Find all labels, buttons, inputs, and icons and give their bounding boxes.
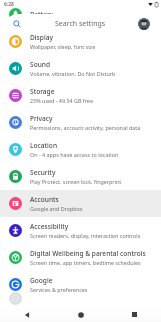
button[interactable]: Account: [138, 18, 150, 30]
staticText: Search settings: [55, 19, 106, 29]
staticText: Accounts: [30, 195, 59, 204]
button[interactable]: Storage: [0, 82, 161, 109]
staticText: Storage: [30, 87, 55, 96]
button[interactable]: Location: [0, 136, 161, 163]
staticText: On - 4 apps have access to location: [30, 151, 119, 158]
staticText: Volume, vibration, Do Not Disturb: [30, 70, 116, 77]
staticText: Google: [30, 276, 53, 285]
button[interactable]: Display: [0, 28, 161, 55]
button[interactable]: Home: [74, 308, 87, 321]
staticText: Wallpaper, sleep, font size: [30, 43, 96, 50]
staticText: Battery: [30, 10, 54, 19]
staticText: Accessibility: [30, 222, 69, 231]
button[interactable]: Google: [0, 271, 161, 298]
staticText: Google and Dropbox: [30, 205, 83, 212]
button[interactable]: Security: [0, 163, 161, 190]
button[interactable]: Accounts: [0, 190, 161, 217]
staticText: Screen readers, display, interaction con…: [30, 232, 141, 239]
button[interactable]: Battery: [0, 1, 161, 28]
staticText: Digital Wellbeing & parental controls: [30, 249, 146, 258]
button[interactable]: Sound: [0, 55, 161, 82]
staticText: Display: [30, 33, 53, 42]
button[interactable]: Back: [20, 308, 33, 321]
button[interactable]: Accessibility: [0, 217, 161, 244]
staticText: Permissions, account activity, personal …: [30, 124, 141, 131]
staticText: Sound: [30, 60, 51, 69]
button[interactable]: Digital Wellbeing & parental controls: [0, 244, 161, 271]
staticText: 6:28: [4, 1, 14, 8]
staticText: Location: [30, 141, 58, 150]
staticText: 23% used - 49.54 GB free: [30, 97, 93, 104]
button[interactable]: System: [0, 298, 161, 299]
staticText: Screen time, app timers, bedtime schedul…: [30, 259, 141, 266]
staticText: Privacy: [30, 114, 53, 123]
staticText: Services & preferences: [30, 286, 88, 293]
staticText: Play Protect, screen lock, fingerprint: [30, 178, 122, 185]
button[interactable]: Search settings: [7, 14, 154, 33]
button[interactable]: Privacy: [0, 109, 161, 136]
staticText: Security: [30, 168, 56, 177]
button[interactable]: Recents: [128, 308, 141, 321]
